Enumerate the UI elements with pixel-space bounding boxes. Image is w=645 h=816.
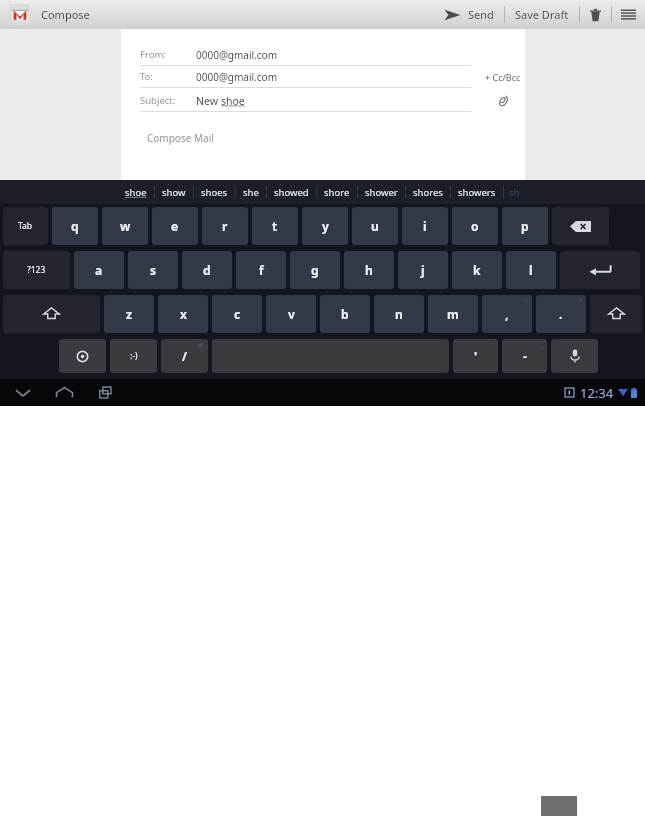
staticText: p: [521, 218, 529, 234]
staticText: a: [95, 262, 103, 278]
staticText: Compose Mail: [147, 131, 214, 145]
button[interactable]: c: [212, 295, 262, 333]
button[interactable]: Enter: [560, 251, 640, 289]
staticText: c: [234, 306, 241, 322]
staticText: sh: [509, 186, 520, 199]
staticText: h: [365, 262, 373, 278]
staticText: z: [126, 306, 132, 322]
staticText: Send: [468, 7, 494, 22]
button[interactable]: More options: [612, 0, 645, 29]
button[interactable]: shoes: [194, 180, 235, 204]
staticText: u: [371, 218, 379, 234]
button[interactable]: b: [320, 295, 370, 333]
button[interactable]: To:: [140, 66, 480, 88]
button[interactable]: l: [506, 251, 556, 289]
button[interactable]: Gmail: [9, 4, 30, 25]
button[interactable]: x: [158, 295, 208, 333]
staticText: g: [311, 262, 319, 278]
button[interactable]: Shift: [3, 295, 100, 333]
button[interactable]: + Cc/Bcc: [482, 68, 524, 86]
button[interactable]: Shift: [590, 295, 642, 333]
button[interactable]: /: [161, 339, 208, 373]
staticText: o: [471, 218, 479, 234]
staticText: 0000@gmail.com: [196, 48, 278, 62]
button[interactable]: Voice input: [551, 339, 598, 373]
button[interactable]: From:: [140, 44, 480, 66]
button[interactable]: r: [202, 207, 248, 245]
button[interactable]: Discard: [580, 0, 611, 29]
button[interactable]: e: [152, 207, 198, 245]
staticText: 12:34: [580, 384, 614, 402]
button[interactable]: v: [266, 295, 316, 333]
button[interactable]: .: [536, 295, 586, 333]
staticText: -: [523, 348, 527, 364]
button[interactable]: showers: [451, 180, 503, 204]
button[interactable]: Compose Mail: [121, 131, 525, 145]
staticText: shoes: [201, 186, 228, 199]
button[interactable]: z: [104, 295, 154, 333]
button[interactable]: Attach file: [490, 88, 516, 114]
button[interactable]: t: [252, 207, 298, 245]
staticText: Tab: [18, 220, 33, 232]
staticText: w: [120, 218, 131, 234]
button[interactable]: f: [236, 251, 286, 289]
staticText: e: [171, 218, 179, 234]
button[interactable]: u: [352, 207, 398, 245]
button[interactable]: g: [290, 251, 340, 289]
button[interactable]: ?123: [3, 251, 70, 289]
staticText: shores: [413, 186, 443, 199]
button[interactable]: j: [398, 251, 448, 289]
staticText: .: [559, 306, 563, 322]
button[interactable]: m: [428, 295, 478, 333]
button[interactable]: sh: [504, 180, 525, 204]
button[interactable]: shoe: [118, 180, 154, 204]
staticText: showed: [274, 186, 309, 199]
button[interactable]: ': [453, 339, 498, 373]
staticText: ?123: [27, 264, 46, 276]
staticText: ": [491, 341, 494, 349]
button[interactable]: Send: [434, 0, 504, 29]
staticText: shoe: [221, 94, 245, 108]
button[interactable]: shower: [358, 180, 405, 204]
staticText: New: [196, 94, 221, 108]
staticText: @: [198, 341, 204, 349]
button[interactable]: p: [502, 207, 548, 245]
button[interactable]: i: [402, 207, 448, 245]
button[interactable]: Subject:: [140, 90, 480, 112]
button[interactable]: showed: [267, 180, 316, 204]
staticText: k: [473, 262, 481, 278]
button[interactable]: w: [102, 207, 148, 245]
button[interactable]: shores: [406, 180, 450, 204]
button[interactable]: show: [155, 180, 193, 204]
staticText: d: [203, 262, 211, 278]
button[interactable]: Hide keyboard: [7, 380, 39, 405]
button[interactable]: y: [302, 207, 348, 245]
button[interactable]: h: [344, 251, 394, 289]
button[interactable]: Save Draft: [505, 0, 579, 29]
button[interactable]: :-): [110, 339, 157, 373]
button[interactable]: o: [452, 207, 498, 245]
button[interactable]: s: [128, 251, 178, 289]
staticText: t: [272, 218, 278, 234]
button[interactable]: ,: [482, 295, 532, 333]
staticText: /: [182, 348, 187, 364]
button[interactable]: d: [182, 251, 232, 289]
button[interactable]: shore: [317, 180, 357, 204]
button[interactable]: Home: [48, 380, 80, 405]
button[interactable]: she: [236, 180, 266, 204]
button[interactable]: Recent apps: [89, 380, 121, 405]
button[interactable]: Backspace: [552, 207, 609, 245]
staticText: q: [71, 218, 79, 234]
button[interactable]: q: [52, 207, 98, 245]
button[interactable]: Tab: [3, 207, 48, 245]
button[interactable]: n: [374, 295, 424, 333]
button[interactable]: Keyboard settings: [59, 339, 106, 373]
staticText: showers: [458, 186, 496, 199]
staticText: Compose: [41, 7, 90, 22]
button[interactable]: a: [74, 251, 124, 289]
staticText: i: [423, 218, 427, 234]
button[interactable]: k: [452, 251, 502, 289]
staticText: n: [395, 306, 403, 322]
button[interactable]: -: [502, 339, 547, 373]
